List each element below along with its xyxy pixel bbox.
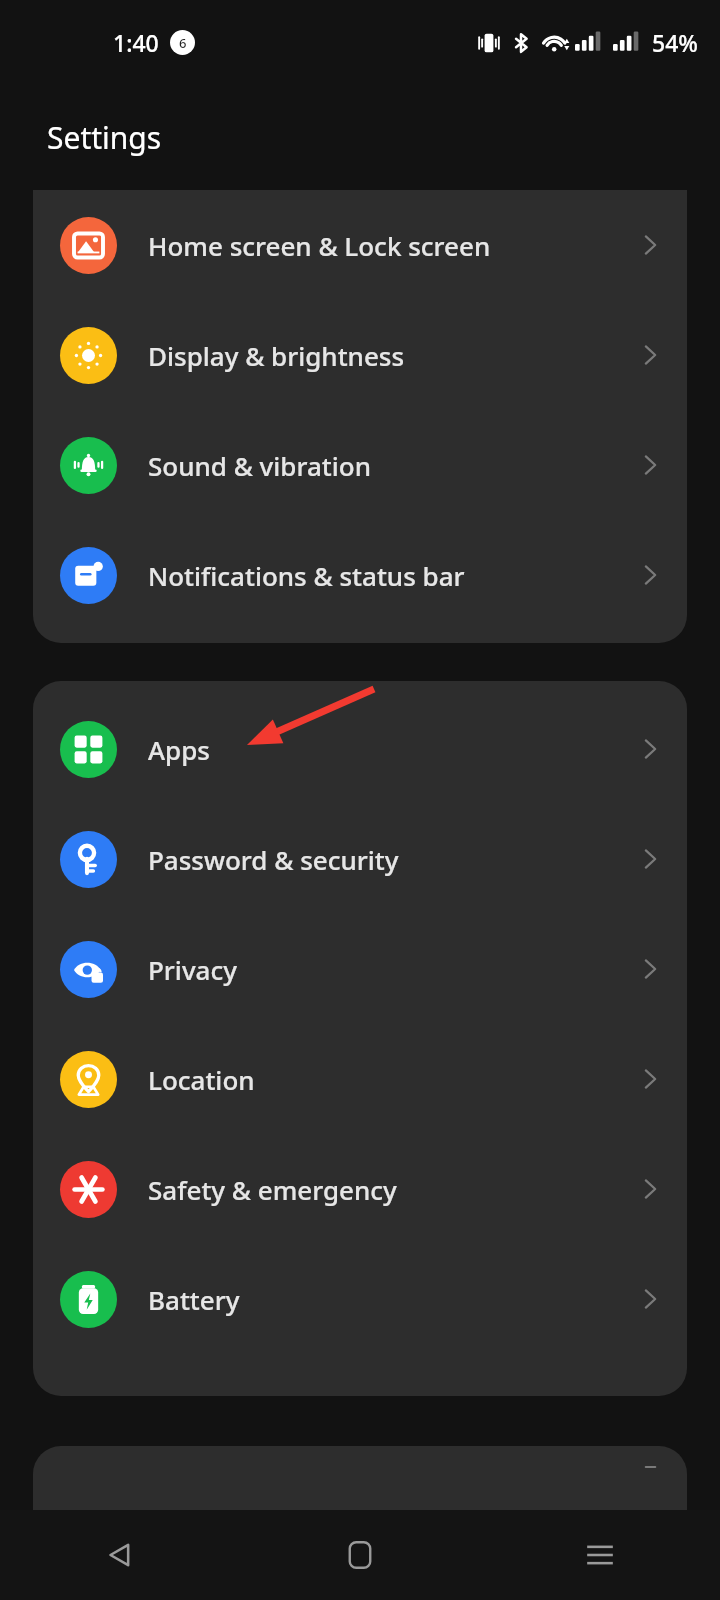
button[interactable]: Sound & vibration: [33, 410, 687, 520]
button[interactable]: Location: [33, 1024, 687, 1134]
staticText: Apps: [148, 732, 637, 767]
staticText: Safety & emergency: [148, 1172, 637, 1207]
button[interactable]: Home screen & Lock screen: [33, 190, 687, 300]
staticText: Settings: [47, 117, 162, 158]
button[interactable]: Safety & emergency: [33, 1134, 687, 1244]
staticText: 54%: [652, 27, 698, 58]
staticText: Home screen & Lock screen: [148, 228, 637, 263]
button[interactable]: Apps: [33, 694, 687, 804]
button[interactable]: Recent apps: [480, 1510, 720, 1600]
staticText: Notifications & status bar: [148, 558, 637, 593]
staticText: Privacy: [148, 952, 637, 987]
staticText: Password & security: [148, 842, 637, 877]
staticText: Location: [148, 1062, 637, 1097]
button[interactable]: Notifications & status bar: [33, 520, 687, 630]
button[interactable]: Battery: [33, 1244, 687, 1354]
staticText: Sound & vibration: [148, 448, 637, 483]
button[interactable]: Home: [240, 1510, 480, 1600]
button[interactable]: Privacy: [33, 914, 687, 1024]
staticText: 1:40: [113, 27, 159, 58]
button[interactable]: Display & brightness: [33, 300, 687, 410]
staticText: 6: [179, 34, 187, 52]
button[interactable]: Password & security: [33, 804, 687, 914]
staticText: Display & brightness: [148, 338, 637, 373]
staticText: Battery: [148, 1282, 637, 1317]
button[interactable]: Back: [0, 1510, 240, 1600]
